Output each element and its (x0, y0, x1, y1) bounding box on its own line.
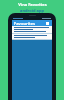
button[interactable] (12, 26, 52, 33)
button[interactable] (12, 34, 52, 39)
button[interactable]: Favourites (12, 20, 52, 26)
staticText: Vina Favorites (18, 2, 47, 7)
button[interactable]: Options (45, 21, 50, 26)
staticText: Favourites (14, 21, 36, 26)
staticText: android app (20, 8, 44, 13)
